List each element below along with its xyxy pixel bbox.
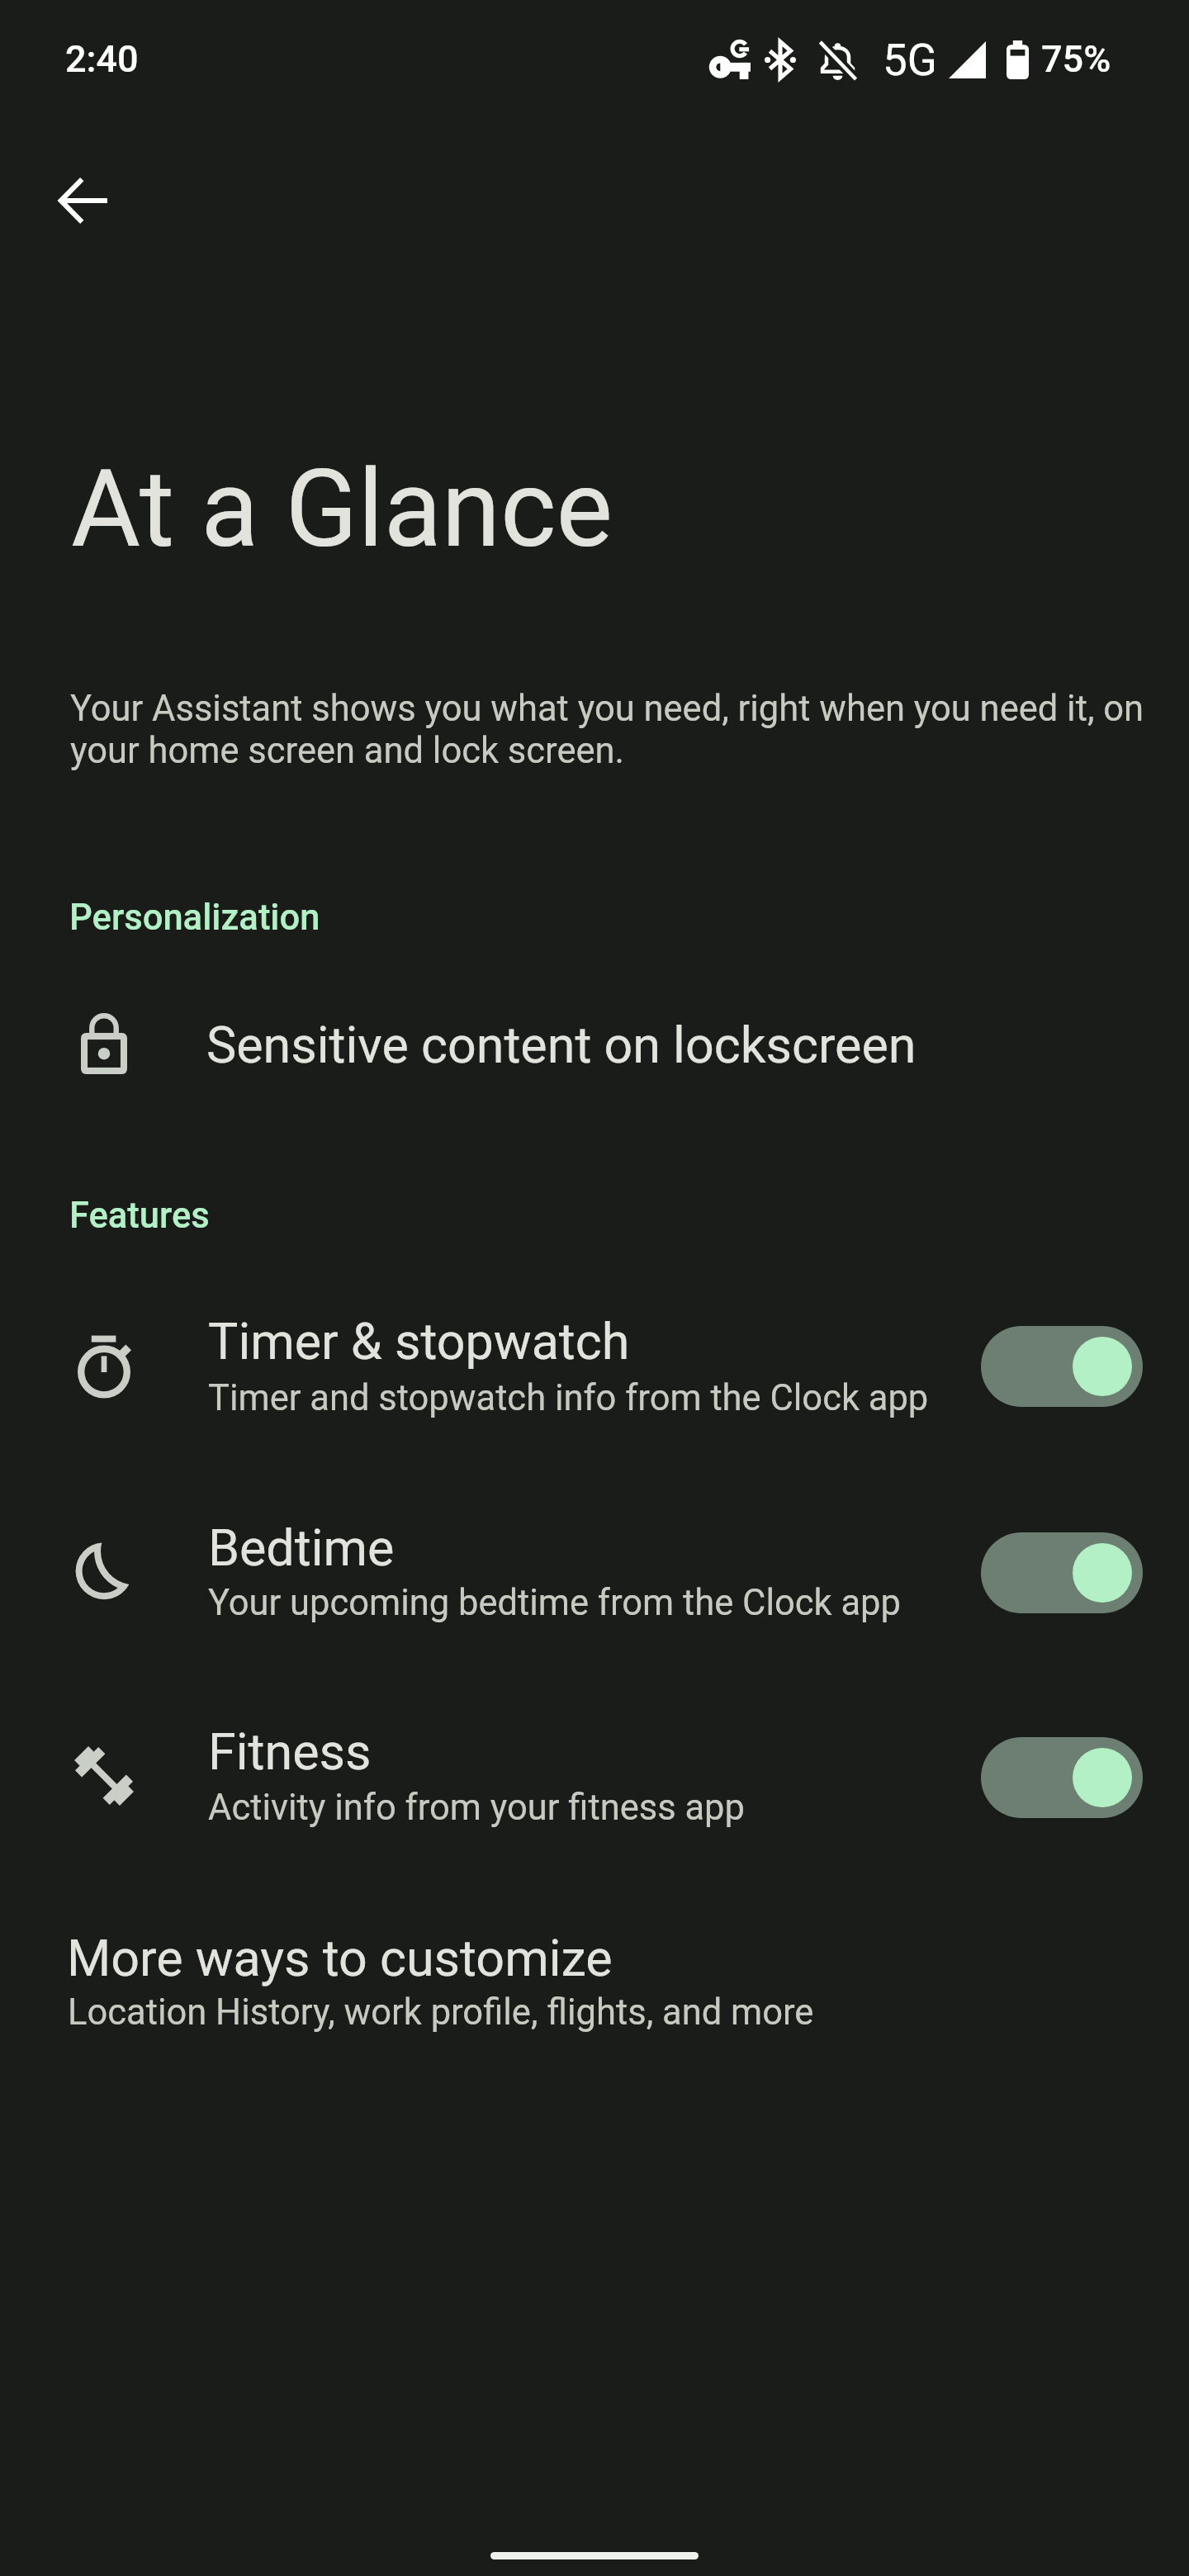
button[interactable]: Timer & stopwatch toggle, on: [981, 1326, 1143, 1407]
staticText: Personalization: [69, 897, 320, 939]
staticText: 2:40: [65, 37, 139, 81]
button[interactable]: Back: [34, 151, 133, 250]
staticText: Bedtime: [208, 1518, 395, 1577]
button[interactable]: Sensitive content on lockscreen: [0, 966, 1189, 1120]
staticText: Fitness: [208, 1722, 372, 1781]
staticText: At a Glance: [71, 447, 613, 571]
staticText: Timer & stopwatch: [208, 1312, 630, 1371]
staticText: Timer and stopwatch info from the Clock …: [208, 1377, 929, 1419]
staticText: Activity info from your fitness app: [208, 1787, 745, 1829]
button[interactable]: Bedtime: [0, 1470, 1189, 1674]
staticText: Location History, work profile, flights,…: [68, 1991, 814, 2034]
staticText: Your upcoming bedtime from the Clock app: [208, 1582, 901, 1624]
button[interactable]: Fitness: [0, 1674, 1189, 1879]
button[interactable]: Bedtime toggle, on: [981, 1532, 1143, 1613]
staticText: More ways to customize: [67, 1929, 613, 1987]
staticText: Features: [69, 1195, 210, 1237]
staticText: your home screen and lock screen.: [70, 730, 625, 772]
staticText: 75%: [1041, 37, 1111, 81]
staticText: Your Assistant shows you what you need, …: [70, 688, 1144, 730]
staticText: 5G: [883, 35, 937, 86]
button[interactable]: Fitness toggle, on: [981, 1737, 1143, 1818]
staticText: Sensitive content on lockscreen: [206, 1016, 917, 1074]
button[interactable]: More ways to customize: [0, 1891, 1189, 2056]
button[interactable]: Timer & stopwatch: [0, 1263, 1189, 1468]
